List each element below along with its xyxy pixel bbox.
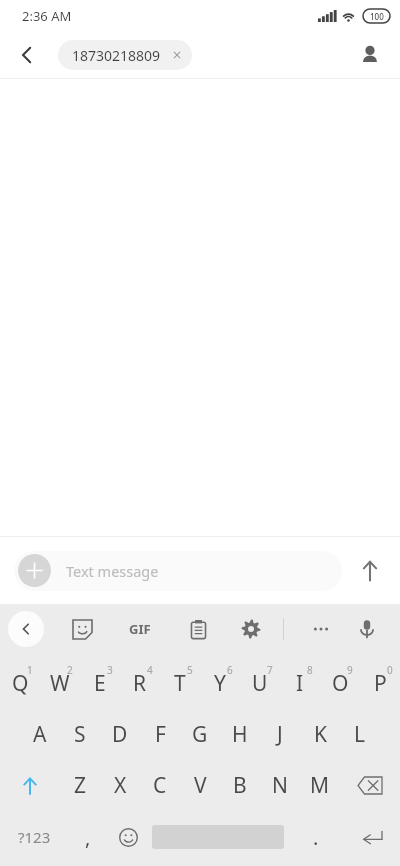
staticText: F (155, 720, 166, 749)
button[interactable]: Enter (344, 811, 400, 863)
button[interactable]: Backspace (340, 760, 400, 811)
button[interactable]: Clipboard (178, 609, 218, 649)
button[interactable]: F (140, 709, 180, 760)
staticText: U (252, 669, 268, 698)
button[interactable]: L (340, 709, 380, 760)
staticText: I (296, 669, 304, 698)
staticText: E (94, 669, 106, 698)
button[interactable]: Close toolbar (8, 611, 44, 647)
button[interactable]: T (160, 658, 200, 709)
button[interactable]: Stickers (62, 609, 102, 649)
button[interactable]: GIF (118, 607, 162, 651)
staticText: 6 (227, 663, 233, 677)
staticText: 8 (307, 663, 313, 677)
button[interactable]: Settings (230, 608, 272, 650)
staticText: 7 (267, 663, 273, 677)
button[interactable]: S (60, 709, 100, 760)
button[interactable]: K (300, 709, 340, 760)
staticText: Text message (66, 561, 159, 581)
button[interactable]: Q (0, 658, 40, 709)
staticText: A (33, 720, 47, 749)
button[interactable]: Y (200, 658, 240, 709)
button[interactable]: Send (348, 549, 392, 593)
staticText: Q (12, 669, 29, 698)
button[interactable]: B (220, 760, 260, 811)
staticText: H (232, 720, 248, 749)
staticText: M (310, 771, 330, 800)
button[interactable]: Voice input (346, 608, 388, 650)
staticText: S (74, 720, 86, 749)
staticText: Z (74, 771, 87, 800)
button[interactable]: Z (60, 760, 100, 811)
button[interactable]: . (288, 811, 344, 863)
button[interactable]: ?123 (0, 811, 68, 863)
staticText: 3 (107, 663, 113, 677)
button[interactable]: I (280, 658, 320, 709)
button[interactable]: M (300, 760, 340, 811)
button[interactable]: Shift (0, 760, 60, 811)
button[interactable]: O (320, 658, 360, 709)
staticText: J (277, 720, 283, 749)
button[interactable]: N (260, 760, 300, 811)
button[interactable]: V (180, 760, 220, 811)
button[interactable]: More options (300, 608, 342, 650)
button[interactable]: 18730218809 (58, 40, 192, 70)
staticText: O (332, 669, 349, 698)
staticText: B (233, 771, 247, 800)
button[interactable]: Text message (14, 551, 342, 591)
staticText: D (112, 720, 128, 749)
staticText: W (50, 669, 70, 698)
staticText: R (133, 669, 147, 698)
button[interactable]: D (100, 709, 140, 760)
staticText: 100 (370, 11, 384, 22)
staticText: 5 (187, 663, 193, 677)
staticText: 2:36 AM (22, 7, 72, 25)
button[interactable]: , (68, 811, 108, 863)
button[interactable]: P (360, 658, 400, 709)
staticText: C (153, 771, 167, 800)
staticText: P (374, 669, 387, 698)
staticText: Y (214, 669, 226, 698)
staticText: 4 (147, 663, 153, 677)
staticText: 18730218809 (72, 46, 161, 65)
staticText: . (313, 824, 319, 851)
staticText: V (194, 771, 207, 800)
staticText: T (174, 669, 186, 698)
button[interactable]: Contact (350, 35, 390, 75)
button[interactable]: J (260, 709, 300, 760)
button[interactable]: U (240, 658, 280, 709)
button[interactable]: W (40, 658, 80, 709)
staticText: 1 (27, 663, 33, 677)
staticText: ?123 (18, 827, 51, 847)
staticText: N (272, 771, 288, 800)
staticText: 9 (347, 663, 353, 677)
staticText: GIF (129, 620, 151, 638)
button[interactable]: Emoji (108, 811, 148, 863)
button[interactable]: A (20, 709, 60, 760)
button[interactable]: C (140, 760, 180, 811)
staticText: K (314, 720, 327, 749)
button[interactable]: Back (6, 34, 48, 76)
button[interactable]: E (80, 658, 120, 709)
staticText: 2 (67, 663, 73, 677)
button[interactable]: H (220, 709, 260, 760)
button[interactable]: G (180, 709, 220, 760)
staticText: , (85, 824, 91, 851)
staticText: L (354, 720, 366, 749)
button[interactable]: R (120, 658, 160, 709)
staticText: X (114, 771, 127, 800)
staticText: 0 (387, 663, 393, 677)
staticText: G (192, 720, 208, 749)
button[interactable]: X (100, 760, 140, 811)
button[interactable]: Add attachment (18, 554, 51, 587)
